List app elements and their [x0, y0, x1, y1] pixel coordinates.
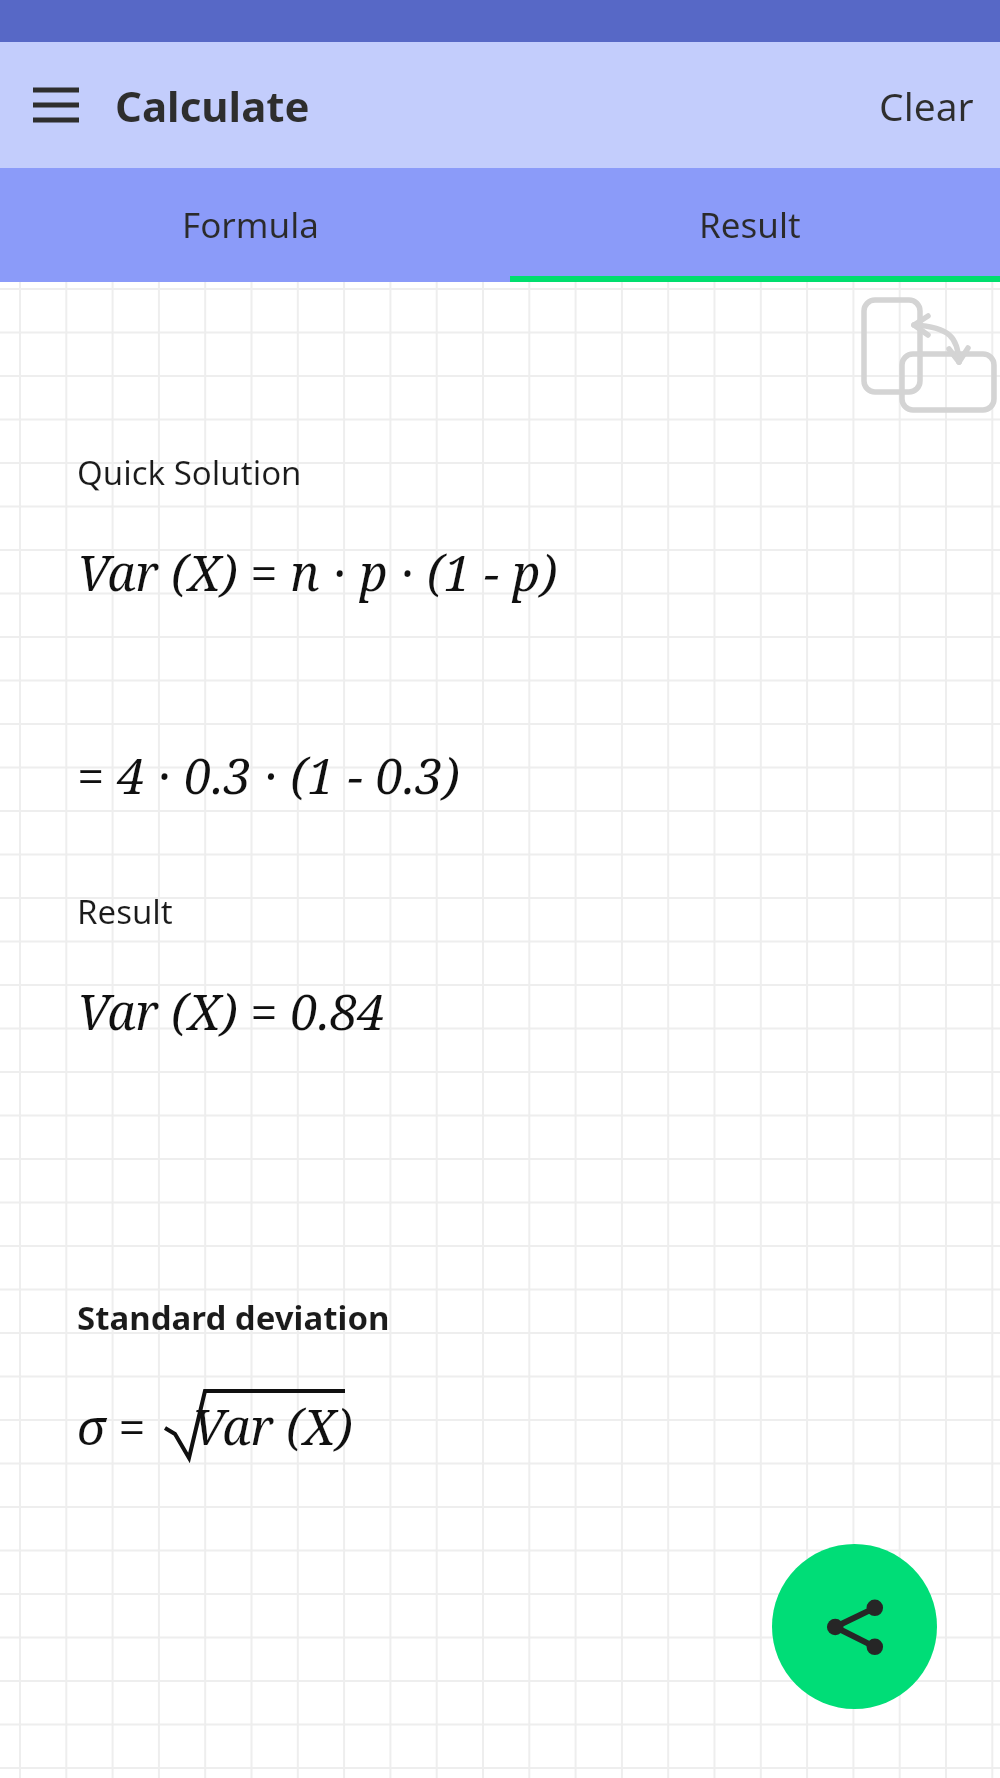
- button[interactable]: Share: [772, 1544, 937, 1709]
- staticText: σ =: [77, 1393, 159, 1460]
- button[interactable]: Result: [500, 168, 1000, 282]
- staticText: Result: [699, 201, 801, 249]
- staticText: Standard deviation: [77, 1295, 390, 1340]
- staticText: Clear: [879, 79, 974, 132]
- staticText: Var (X): [192, 1393, 353, 1460]
- staticText: Calculate: [115, 77, 310, 134]
- button[interactable]: Formula: [0, 168, 500, 282]
- button[interactable]: Rotate device: [854, 288, 964, 398]
- staticText: = 4 · 0.3 · (1 − 0.3): [77, 742, 460, 809]
- button[interactable]: Open navigation menu: [20, 69, 92, 141]
- staticText: Var (X) = 0.84: [77, 978, 385, 1045]
- staticText: Result: [77, 889, 173, 934]
- button[interactable]: Clear: [853, 55, 1000, 156]
- staticText: Var (X) = n · p · (1 − p): [77, 539, 558, 606]
- staticText: Formula: [182, 201, 319, 249]
- staticText: Quick Solution: [77, 450, 302, 495]
